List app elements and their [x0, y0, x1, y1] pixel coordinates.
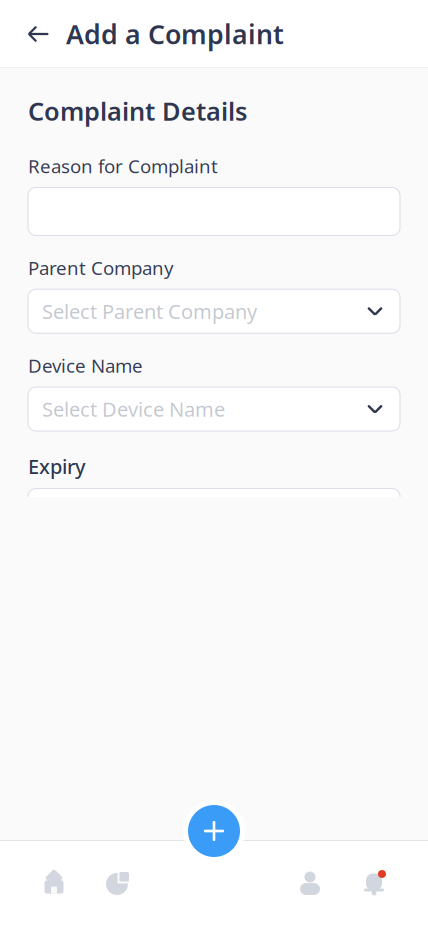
- staticText: Select Device Name: [42, 396, 225, 422]
- staticText: Select Parent Company: [42, 298, 257, 324]
- staticText: Parent Company: [28, 255, 174, 280]
- staticText: Reason for Complaint: [28, 154, 218, 178]
- button[interactable]: Add: [183, 800, 245, 862]
- button[interactable]: Select Device Name: [28, 387, 400, 431]
- staticText: Expiry: [28, 453, 86, 480]
- button[interactable]: Back: [16, 12, 60, 56]
- button[interactable]: Notifications: [342, 855, 406, 911]
- staticText: Device Name: [28, 353, 143, 378]
- staticText: Add a Complaint: [66, 16, 284, 52]
- button[interactable]: Home: [22, 855, 86, 911]
- button[interactable]: Statistics: [86, 855, 150, 911]
- button[interactable]: Profile: [278, 855, 342, 911]
- staticText: Complaint Details: [28, 94, 247, 128]
- button[interactable]: Select Parent Company: [28, 289, 400, 333]
